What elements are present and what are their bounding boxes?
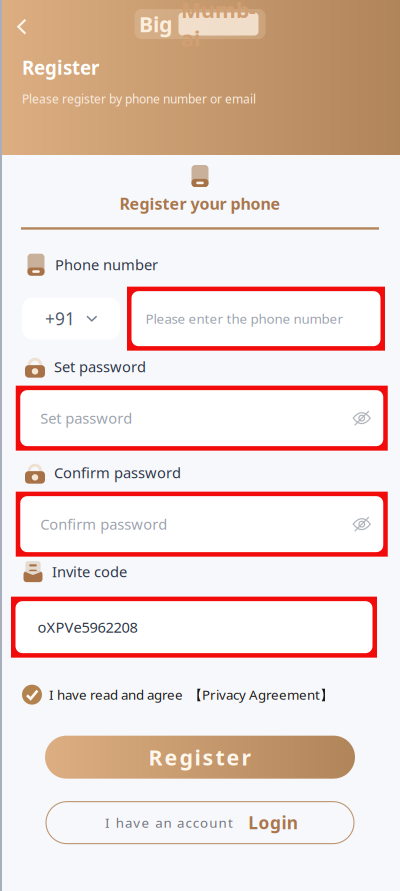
- staticText: Big: [139, 10, 172, 38]
- staticText: Set password: [40, 408, 132, 428]
- staticText: Login: [248, 811, 298, 834]
- staticText: Invite code: [52, 562, 127, 581]
- staticText: Set password: [54, 357, 146, 376]
- staticText: I have read and agree 【Privacy Agreement…: [49, 686, 333, 704]
- staticText: Register: [148, 743, 251, 771]
- button[interactable]: I have an account: [46, 802, 354, 844]
- staticText: Confirm password: [54, 463, 181, 482]
- staticText: Register your phone: [119, 193, 280, 214]
- button[interactable]: Back: [3, 13, 41, 41]
- staticText: +91: [45, 307, 75, 330]
- button[interactable]: +91: [22, 298, 120, 340]
- staticText: Phone number: [55, 255, 158, 274]
- staticText: Mumbai: [181, 0, 256, 52]
- staticText: oXPVe5962208: [37, 617, 137, 637]
- staticText: Please register by phone number or email: [22, 91, 256, 107]
- staticText: Confirm password: [40, 514, 167, 534]
- button[interactable]: Agree to privacy agreement: [22, 685, 42, 705]
- button[interactable]: Register: [45, 736, 355, 779]
- button[interactable]: Show password: [352, 409, 392, 428]
- staticText: I have an account: [105, 814, 233, 831]
- staticText: Please enter the phone number: [145, 310, 343, 327]
- staticText: Register: [22, 55, 99, 80]
- button[interactable]: Show confirm password: [352, 515, 392, 534]
